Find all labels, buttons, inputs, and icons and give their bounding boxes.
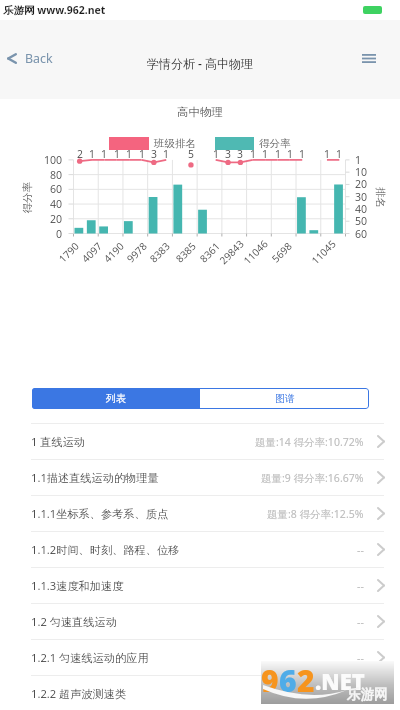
staticText: 1.1.1坐标系、参考系、质点	[31, 506, 169, 521]
staticText: 1	[114, 147, 120, 160]
staticText: 6	[279, 660, 297, 701]
staticText: 1.2 匀速直线运动	[31, 614, 117, 629]
staticText: 题量:8 得分率:12.5%	[267, 507, 364, 521]
staticText: 4097	[79, 239, 105, 265]
staticText: 9978	[124, 239, 150, 265]
staticText: 列表	[106, 392, 126, 405]
staticText: 图谱	[275, 392, 295, 405]
button[interactable]: Menu	[348, 44, 400, 73]
button[interactable]: 1.2 匀速直线运动	[0, 604, 400, 639]
staticText: 1	[101, 147, 107, 160]
staticText: --	[357, 543, 364, 557]
staticText: 1	[262, 147, 268, 160]
staticText: 1	[275, 147, 281, 160]
staticText: 8385	[173, 239, 199, 265]
staticText: 9	[261, 660, 279, 701]
staticText: 3	[151, 147, 157, 160]
staticText: 60	[50, 182, 63, 196]
staticText: 2	[77, 147, 83, 160]
staticText: 1	[89, 147, 95, 160]
button[interactable]: 1.1.3速度和加速度	[0, 568, 400, 603]
staticText: .NET	[315, 666, 365, 696]
staticText: 5	[188, 147, 194, 160]
staticText: 20	[355, 177, 368, 191]
button[interactable]: 1.1.1坐标系、参考系、质点	[0, 496, 400, 531]
staticText: 1	[250, 147, 256, 160]
button[interactable]: 1.1描述直线运动的物理量	[0, 460, 400, 495]
button[interactable]: 1.1.2时间、时刻、路程、位移	[0, 532, 400, 567]
staticText: 1	[163, 147, 169, 160]
staticText: 题量:9 得分率:16.67%	[261, 471, 364, 485]
staticText: 班级排名	[154, 137, 196, 150]
staticText: 50	[355, 214, 368, 228]
staticText: 3	[237, 147, 243, 160]
staticText: 8361	[197, 239, 223, 265]
staticText: 3	[225, 147, 231, 160]
staticText: 乐游网 www.962.net	[3, 3, 106, 17]
staticText: 得分率	[259, 137, 291, 150]
staticText: 30	[355, 190, 368, 204]
staticText: 得分率	[20, 181, 33, 213]
staticText: 1	[139, 147, 145, 160]
staticText: 4190	[101, 239, 127, 265]
staticText: 1	[287, 147, 293, 160]
staticText: 0	[56, 227, 63, 241]
staticText: 1	[126, 147, 132, 160]
staticText: 题量:14 得分率:10.72%	[255, 435, 364, 449]
staticText: 1.2.1 匀速线运动的应用	[31, 650, 149, 665]
staticText: 1.1.2时间、时刻、路程、位移	[31, 542, 180, 557]
staticText: 1	[213, 147, 219, 160]
staticText: 8383	[147, 239, 173, 265]
staticText: --	[357, 651, 364, 665]
staticText: 1	[324, 147, 330, 160]
staticText: 乐游网	[347, 686, 388, 703]
staticText: 20	[50, 212, 63, 226]
staticText: 高中物理	[177, 105, 223, 119]
staticText: 1	[336, 147, 342, 160]
staticText: 2	[297, 660, 315, 701]
staticText: 1	[355, 153, 362, 167]
staticText: 1	[299, 147, 305, 160]
staticText: --	[357, 686, 364, 700]
staticText: 80	[50, 168, 63, 182]
button[interactable]: 1 直线运动	[0, 424, 400, 459]
staticText: 排名	[374, 187, 387, 208]
button[interactable]: 图谱	[200, 388, 369, 409]
staticText: 29843	[216, 237, 247, 267]
staticText: 5698	[269, 239, 295, 265]
button[interactable]: Back	[0, 44, 63, 73]
staticText: 11045	[308, 237, 339, 267]
button[interactable]: 1.2.2 超声波测速类	[0, 676, 400, 710]
staticText: 学情分析 - 高中物理	[147, 55, 254, 71]
staticText: 11046	[240, 237, 271, 267]
staticText: 40	[50, 197, 63, 211]
staticText: 1.1.3速度和加速度	[31, 578, 124, 593]
staticText: 1790	[56, 239, 82, 265]
staticText: 1.2.2 超声波测速类	[31, 686, 127, 701]
staticText: 40	[355, 202, 368, 216]
button[interactable]: 1.2.1 匀速线运动的应用	[0, 640, 400, 675]
staticText: --	[357, 579, 364, 593]
staticText: --	[357, 615, 364, 629]
button[interactable]: 列表	[32, 388, 200, 409]
staticText: 1.1描述直线运动的物理量	[31, 470, 159, 485]
staticText: Back	[25, 50, 53, 67]
staticText: 1 直线运动	[31, 434, 86, 449]
staticText: 100	[44, 153, 63, 167]
staticText: 10	[355, 165, 368, 179]
staticText: 60	[355, 227, 368, 241]
